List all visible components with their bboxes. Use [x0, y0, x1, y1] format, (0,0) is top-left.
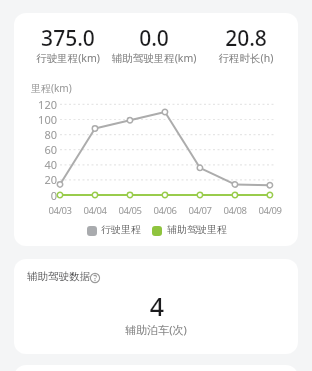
- staticText: 0: [22, 188, 57, 203]
- staticText: 04/09: [250, 204, 290, 217]
- staticText: 行驶里程(km): [14, 51, 123, 65]
- staticText: 100: [22, 112, 57, 127]
- staticText: 120: [22, 97, 57, 112]
- staticText: 辅助驾驶里程(km): [99, 51, 209, 65]
- staticText: 0.0: [99, 24, 209, 53]
- staticText: 80: [22, 127, 57, 142]
- staticText: 20.8: [191, 24, 298, 53]
- staticText: 辅助驾驶数据: [27, 270, 90, 283]
- staticText: 20: [22, 172, 57, 187]
- staticText: 40: [22, 157, 57, 172]
- staticText: 04/06: [145, 204, 185, 217]
- staticText: 行驶里程: [101, 223, 141, 236]
- staticText: 60: [22, 142, 57, 157]
- staticText: 04/03: [40, 204, 80, 217]
- staticText: 04/04: [75, 204, 115, 217]
- staticText: 04/07: [180, 204, 220, 217]
- button[interactable]: 0.0: [99, 24, 209, 69]
- staticText: 里程(km): [31, 81, 72, 95]
- button[interactable]: 20.8: [191, 24, 298, 69]
- button[interactable]: [87, 226, 97, 236]
- button[interactable]: [152, 226, 162, 236]
- staticText: 辅助驾驶里程: [167, 223, 227, 236]
- staticText: 04/05: [110, 204, 150, 217]
- staticText: 04/08: [215, 204, 255, 217]
- staticText: 辅助泊车(次): [96, 322, 216, 337]
- staticText: 375.0: [14, 24, 123, 53]
- staticText: 行程时长(h): [191, 51, 298, 65]
- button[interactable]: [90, 273, 100, 283]
- staticText: 4: [127, 289, 187, 323]
- button[interactable]: 辅助驾驶数据: [27, 270, 90, 283]
- button[interactable]: 375.0: [14, 24, 123, 69]
